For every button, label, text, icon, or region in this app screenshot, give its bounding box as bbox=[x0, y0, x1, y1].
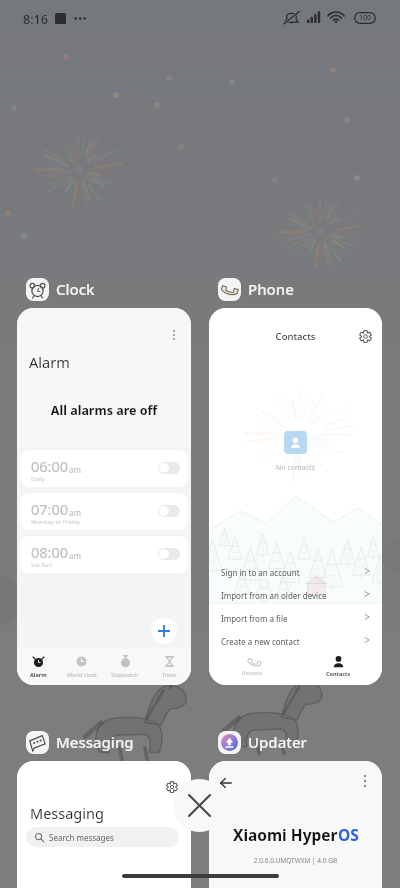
staticText: Monday to Friday bbox=[31, 518, 81, 526]
staticText: Contacts bbox=[209, 330, 382, 343]
staticText: Xiaomi Hyper bbox=[233, 824, 338, 845]
staticText: World clock bbox=[67, 671, 97, 678]
staticText: am bbox=[69, 507, 81, 518]
button[interactable]: 08:00 bbox=[20, 536, 188, 573]
button[interactable]: Messaging bbox=[26, 728, 134, 756]
staticText: Contacts bbox=[326, 670, 351, 677]
button[interactable]: Clock bbox=[26, 275, 95, 303]
staticText: Daily bbox=[31, 475, 45, 483]
staticText: Clock bbox=[56, 279, 95, 299]
button[interactable]: Settings bbox=[356, 327, 374, 345]
button[interactable]: More options bbox=[358, 775, 372, 791]
staticText: Alarm bbox=[30, 671, 47, 678]
button[interactable]: Import from an older device bbox=[209, 583, 382, 606]
staticText: Sat Sun bbox=[31, 561, 53, 569]
staticText: Messaging bbox=[30, 803, 104, 823]
button[interactable] bbox=[158, 462, 180, 474]
staticText: 07:00 bbox=[31, 499, 69, 519]
button[interactable]: Contacts bbox=[209, 308, 382, 685]
staticText: Import from a file bbox=[221, 613, 288, 624]
button[interactable]: Phone bbox=[218, 275, 294, 303]
staticText: Alarm bbox=[29, 352, 70, 372]
button[interactable]: Sign in to an account bbox=[209, 560, 382, 583]
button[interactable]: Timer bbox=[147, 648, 191, 685]
button[interactable]: Search messages bbox=[26, 827, 179, 847]
staticText: 8:16 bbox=[23, 11, 48, 28]
button[interactable]: Updater bbox=[218, 728, 307, 756]
button[interactable]: Import from a file bbox=[209, 606, 382, 629]
staticText: No contacts bbox=[209, 463, 382, 473]
staticText: am bbox=[69, 550, 81, 561]
staticText: Create a new contact bbox=[221, 636, 300, 647]
staticText: All alarms are off bbox=[17, 402, 191, 419]
staticText: Sign in to an account bbox=[221, 567, 300, 578]
staticText: Import from an older device bbox=[221, 590, 327, 601]
button[interactable]: Contacts bbox=[295, 647, 382, 685]
button[interactable]: Close all bbox=[173, 779, 226, 832]
staticText: Messaging bbox=[56, 732, 134, 752]
button[interactable]: 07:00 bbox=[20, 493, 188, 530]
button[interactable]: Back bbox=[209, 761, 382, 888]
button[interactable]: Back bbox=[215, 772, 237, 794]
button[interactable]: Stopwatch bbox=[103, 648, 147, 685]
button[interactable]: Alarm bbox=[17, 648, 60, 685]
button[interactable]: 06:00 bbox=[20, 450, 188, 487]
staticText: Stopwatch bbox=[111, 671, 139, 678]
staticText: 06:00 bbox=[31, 456, 69, 476]
button[interactable]: World clock bbox=[60, 648, 103, 685]
staticText: Recents bbox=[242, 669, 263, 676]
staticText: Search messages bbox=[49, 832, 114, 843]
staticText: 100 bbox=[359, 13, 372, 23]
button[interactable]: Create a new contact bbox=[209, 629, 382, 652]
button[interactable]: Messaging settings bbox=[17, 761, 191, 888]
staticText: 08:00 bbox=[31, 542, 69, 562]
staticText: OS bbox=[338, 824, 359, 845]
button[interactable]: Recents bbox=[209, 647, 295, 685]
button[interactable]: More options bbox=[167, 330, 181, 346]
staticText: 2.0.6.0.UMQTWXM | 4.0 GB bbox=[209, 856, 382, 865]
staticText: Phone bbox=[248, 279, 294, 299]
button[interactable] bbox=[158, 548, 180, 560]
staticText: am bbox=[69, 464, 81, 475]
button[interactable]: Add alarm bbox=[151, 618, 177, 644]
staticText: Timer bbox=[162, 671, 177, 678]
staticText: Updater bbox=[248, 732, 307, 752]
button[interactable]: Messaging settings bbox=[163, 778, 181, 796]
button[interactable] bbox=[158, 505, 180, 517]
button[interactable]: More options bbox=[17, 308, 191, 685]
